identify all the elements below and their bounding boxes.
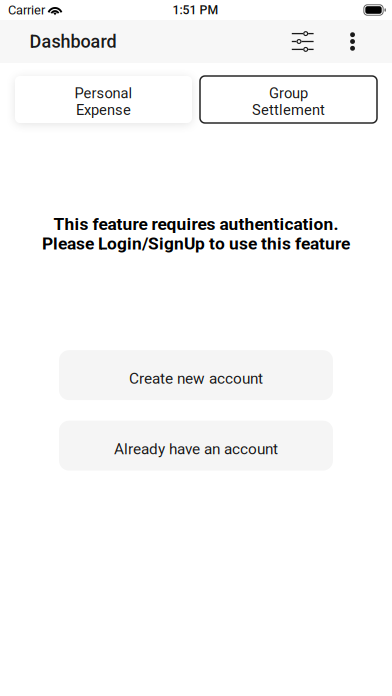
staticText: Please Login/SignUp to use this feature [42, 233, 350, 254]
staticText: Expense [76, 101, 131, 119]
staticText: Carrier [8, 2, 45, 17]
button[interactable]: Already have an account [59, 421, 333, 471]
staticText: Personal [74, 85, 132, 102]
button[interactable]: Create new account [59, 350, 333, 400]
button[interactable]: More options [339, 20, 366, 63]
button[interactable]: Group [200, 76, 377, 123]
staticText: This feature requires authentication. [53, 214, 338, 234]
button[interactable]: Personal [15, 76, 192, 123]
staticText: 1:51 PM [172, 3, 218, 17]
staticText: Dashboard [29, 31, 116, 52]
staticText: Already have an account [114, 440, 278, 458]
staticText: Settlement [252, 101, 325, 119]
staticText: Group [269, 85, 308, 102]
staticText: Create new account [129, 370, 263, 388]
button[interactable]: Filters [281, 20, 325, 63]
